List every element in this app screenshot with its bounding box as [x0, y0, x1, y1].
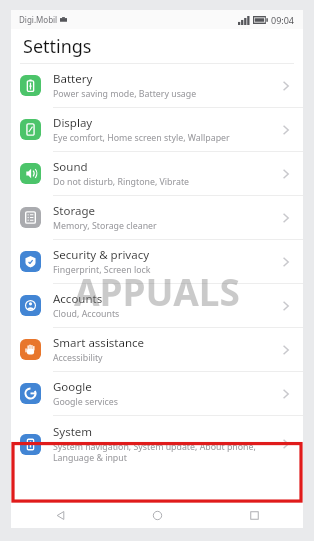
button[interactable]: System	[11, 416, 303, 472]
button[interactable]: Storage	[11, 196, 303, 239]
staticText: Security & privacy	[53, 247, 150, 263]
staticText: Cloud, Accounts	[53, 308, 120, 320]
button[interactable]: Security & privacy	[11, 240, 303, 283]
staticText: Eye comfort, Home screen style, Wallpape…	[53, 132, 230, 144]
staticText: Settings	[23, 34, 92, 59]
staticText: Do not disturb, Ringtone, Vibrate	[53, 176, 190, 188]
button[interactable]: Google	[11, 372, 303, 415]
staticText: Storage	[53, 203, 95, 219]
staticText: Fingerprint, Screen lock	[53, 264, 151, 276]
button[interactable]: Recent apps	[206, 502, 303, 528]
staticText: Display	[53, 115, 93, 131]
staticText: Google	[53, 379, 92, 395]
staticText: Digi.Mobil	[19, 14, 58, 25]
staticText: Memory, Storage cleaner	[53, 220, 157, 232]
button[interactable]: Home	[109, 502, 206, 528]
staticText: System navigation, System update, About …	[53, 441, 274, 464]
staticText: Power saving mode, Battery usage	[53, 88, 197, 100]
button[interactable]: Back	[11, 502, 109, 528]
button[interactable]: Battery	[11, 64, 303, 107]
staticText: Sound	[53, 159, 88, 175]
staticText: Accounts	[53, 291, 103, 307]
button[interactable]: Accounts	[11, 284, 303, 327]
staticText: Accessibility	[53, 352, 103, 364]
button[interactable]: Sound	[11, 152, 303, 195]
staticText: Google services	[53, 396, 118, 408]
staticText: System	[53, 424, 93, 440]
button[interactable]: Smart assistance	[11, 328, 303, 371]
button[interactable]: Display	[11, 108, 303, 151]
staticText: Battery	[53, 71, 93, 87]
staticText: Smart assistance	[53, 335, 145, 351]
staticText: 09:04	[271, 14, 295, 26]
staticText: APPUALS	[74, 266, 240, 316]
